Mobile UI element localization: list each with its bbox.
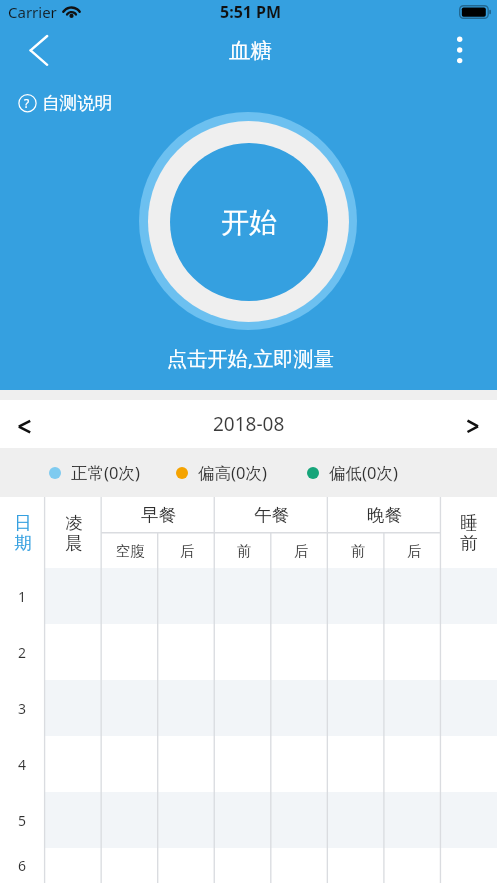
staticText: 点击开始,立即测量 [167,344,334,372]
staticText: 偏低(0次) [329,461,398,484]
button[interactable]: 日 期 [0,497,45,568]
staticText: 后 [407,542,422,560]
button[interactable]: 正常(0次) [49,461,140,484]
staticText: 5:51 PM [220,1,282,23]
staticText: 前 [351,542,366,560]
staticText: 2 [18,643,27,662]
button[interactable]: More options [440,30,480,70]
staticText: 1 [18,587,27,606]
staticText: 晚餐 [367,504,402,526]
staticText: 偏高(0次) [198,461,267,484]
staticText: 后 [294,542,309,560]
button[interactable]: Next month [445,400,497,448]
staticText: 5 [18,811,27,830]
staticText: 正常(0次) [71,461,140,484]
staticText: ? [24,95,30,111]
staticText: 开始 [221,205,277,240]
staticText: 日 期 [14,512,32,554]
staticText: 自测说明 [42,92,113,114]
staticText: 6 [18,856,27,875]
staticText: 早餐 [141,504,176,526]
button[interactable]: 凌 晨 [45,497,102,568]
staticText: Carrier [8,2,57,22]
staticText: 午餐 [254,504,289,526]
button[interactable]: ? [14,90,113,116]
staticText: 后 [180,542,195,560]
staticText: 3 [18,699,27,718]
staticText: 2018-08 [213,411,285,437]
staticText: 睡 前 [460,512,478,554]
staticText: 前 [237,542,252,560]
staticText: 空腹 [116,542,145,560]
button[interactable]: Back [16,30,56,70]
button[interactable]: 开始 [139,112,357,330]
button[interactable]: 睡 前 [441,497,497,568]
button[interactable]: 偏高(0次) [176,461,267,484]
staticText: 血糖 [229,37,272,64]
staticText: 凌 晨 [65,512,83,554]
button[interactable]: Previous month [0,400,52,448]
button[interactable]: 偏低(0次) [307,461,398,484]
staticText: 4 [18,755,27,774]
